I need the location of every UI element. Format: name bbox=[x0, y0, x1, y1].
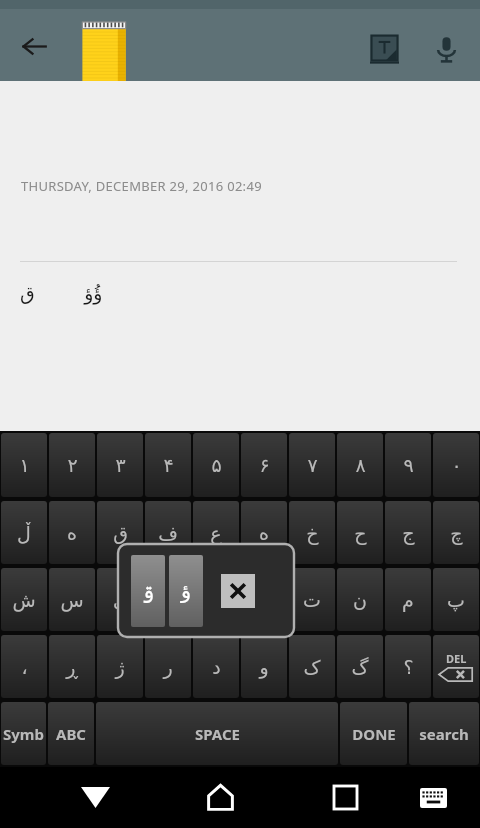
button[interactable]: ە bbox=[49, 501, 95, 564]
button[interactable]: چ bbox=[433, 501, 479, 564]
button[interactable]: ا bbox=[241, 568, 287, 631]
staticText: THURSDAY, DECEMBER 29, 2016 02:49 bbox=[21, 177, 262, 195]
staticText: ۴ bbox=[163, 454, 174, 476]
staticText: ۊ bbox=[142, 579, 155, 603]
button[interactable]: ۰ bbox=[433, 433, 479, 497]
staticText: search bbox=[419, 724, 469, 744]
button[interactable]: ڕ bbox=[49, 635, 95, 698]
button[interactable]: DEL bbox=[433, 635, 479, 698]
staticText: ۰ bbox=[451, 454, 462, 476]
staticText: ی bbox=[113, 589, 128, 611]
button[interactable]: Text format bbox=[364, 29, 404, 69]
staticText: Symb bbox=[3, 724, 44, 744]
staticText: ۳ bbox=[115, 454, 126, 476]
button[interactable]: ۲ bbox=[49, 433, 95, 497]
button[interactable]: ه bbox=[241, 501, 287, 564]
staticText: ت bbox=[303, 589, 321, 611]
button[interactable]: ج bbox=[385, 501, 431, 564]
staticText: ؟ bbox=[403, 656, 414, 678]
staticText: ۱ bbox=[19, 454, 30, 476]
button[interactable]: Back bbox=[14, 26, 54, 66]
staticText: ش bbox=[12, 589, 36, 611]
button[interactable]: ک bbox=[289, 635, 335, 698]
button[interactable]: س bbox=[49, 568, 95, 631]
button[interactable]: Recent apps bbox=[311, 767, 380, 828]
button[interactable]: Notepad bbox=[80, 22, 132, 92]
button[interactable]: Symb bbox=[1, 702, 46, 765]
button[interactable]: ف bbox=[145, 501, 191, 564]
staticText: س bbox=[60, 589, 84, 611]
button[interactable]: ع bbox=[193, 501, 239, 564]
button[interactable]: ABC bbox=[48, 702, 94, 765]
staticText: ڵ bbox=[17, 522, 31, 544]
button[interactable]: Home bbox=[186, 767, 255, 828]
button[interactable]: ی bbox=[97, 568, 143, 631]
staticText: ج bbox=[402, 522, 415, 544]
button[interactable]: Switch keyboard bbox=[402, 767, 464, 828]
button[interactable]: ڵ bbox=[1, 501, 47, 564]
button[interactable]: ۸ bbox=[337, 433, 383, 497]
staticText: و bbox=[259, 656, 269, 678]
staticText: DEL bbox=[446, 651, 467, 666]
button[interactable]: ل bbox=[193, 568, 239, 631]
button[interactable]: ۊ bbox=[131, 555, 165, 627]
staticText: ف bbox=[158, 522, 178, 544]
staticText: ه bbox=[259, 522, 269, 544]
staticText: ۵ bbox=[211, 454, 222, 476]
staticText: ؤ bbox=[181, 579, 192, 603]
button[interactable]: ۵ bbox=[193, 433, 239, 497]
staticText: چ bbox=[450, 522, 463, 544]
button[interactable]: خ bbox=[289, 501, 335, 564]
staticText: ع bbox=[210, 522, 222, 544]
button[interactable]: ن bbox=[337, 568, 383, 631]
staticText: ABC bbox=[56, 724, 86, 744]
button[interactable]: ح bbox=[337, 501, 383, 564]
staticText: ۷ bbox=[307, 454, 318, 476]
staticText: گ bbox=[351, 656, 369, 678]
staticText: ن bbox=[353, 589, 367, 611]
button[interactable]: م bbox=[385, 568, 431, 631]
button[interactable]: د bbox=[193, 635, 239, 698]
staticText: ک bbox=[303, 656, 321, 678]
button[interactable]: گ bbox=[337, 635, 383, 698]
staticText: م bbox=[402, 589, 414, 611]
staticText: ، bbox=[21, 656, 28, 678]
staticText: ۹ bbox=[403, 454, 414, 476]
button[interactable]: DONE bbox=[340, 702, 407, 765]
staticText: ر bbox=[163, 656, 173, 678]
button[interactable]: search bbox=[409, 702, 479, 765]
staticText: SPACE bbox=[195, 724, 240, 744]
button[interactable]: پ bbox=[433, 568, 479, 631]
button[interactable]: و bbox=[241, 635, 287, 698]
staticText: ؤُؤ ق bbox=[20, 280, 103, 306]
staticText: ل bbox=[209, 589, 223, 611]
button[interactable]: ۷ bbox=[289, 433, 335, 497]
button[interactable]: ژ bbox=[97, 635, 143, 698]
button[interactable]: Voice input bbox=[426, 29, 466, 69]
button[interactable]: ر bbox=[145, 635, 191, 698]
button[interactable]: ۹ bbox=[385, 433, 431, 497]
button[interactable]: ب bbox=[145, 568, 191, 631]
staticText: ژ bbox=[115, 656, 125, 678]
button[interactable]: ش bbox=[1, 568, 47, 631]
button[interactable]: ۴ bbox=[145, 433, 191, 497]
button[interactable]: ؤ bbox=[169, 555, 203, 627]
button[interactable]: SPACE bbox=[96, 702, 338, 765]
staticText: ە bbox=[67, 522, 77, 544]
staticText: DONE bbox=[352, 724, 396, 744]
button[interactable]: Close bbox=[221, 574, 255, 608]
staticText: ح bbox=[354, 522, 367, 544]
button[interactable]: ق bbox=[97, 501, 143, 564]
button[interactable]: ، bbox=[1, 635, 47, 698]
button[interactable]: ۶ bbox=[241, 433, 287, 497]
staticText: ۲ bbox=[67, 454, 78, 476]
staticText: ڕ bbox=[66, 656, 78, 678]
button[interactable]: ؟ bbox=[385, 635, 431, 698]
button[interactable]: Hide keyboard bbox=[61, 767, 130, 828]
button[interactable]: ت bbox=[289, 568, 335, 631]
button[interactable]: ۳ bbox=[97, 433, 143, 497]
button[interactable]: ۱ bbox=[1, 433, 47, 497]
staticText: ب bbox=[159, 589, 177, 611]
staticText: ۶ bbox=[259, 454, 270, 476]
staticText: خ bbox=[306, 522, 319, 544]
